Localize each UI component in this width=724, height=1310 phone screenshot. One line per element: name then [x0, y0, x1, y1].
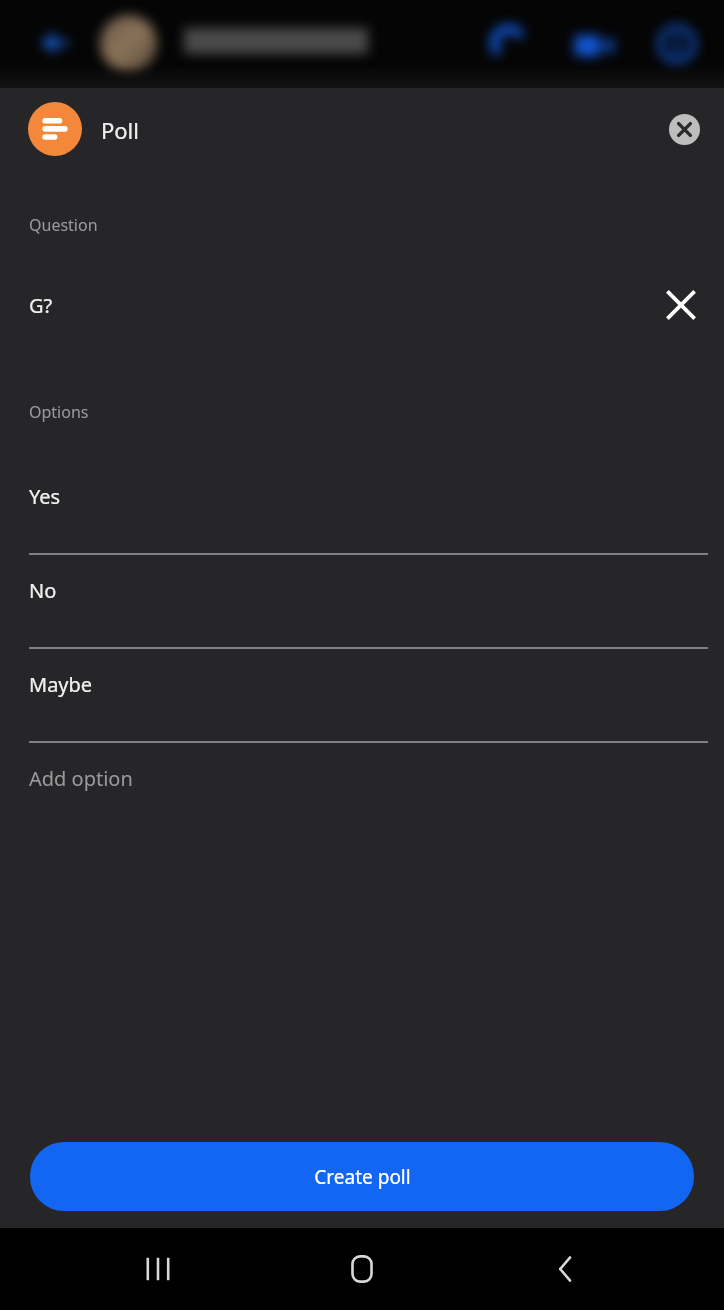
staticText: Add option	[29, 765, 133, 792]
button[interactable]: Close	[669, 114, 700, 145]
button[interactable]: G?	[0, 285, 724, 325]
button[interactable]: Poll	[28, 102, 82, 156]
staticText: Create poll	[314, 1164, 411, 1190]
button[interactable]: Home	[322, 1229, 402, 1309]
button[interactable]: Add option	[0, 754, 724, 848]
staticText: Poll	[101, 115, 139, 145]
staticText: Options	[29, 401, 89, 423]
button[interactable]: Back	[526, 1229, 606, 1309]
staticText: Maybe	[29, 671, 93, 698]
button[interactable]: Recents	[118, 1229, 198, 1309]
button[interactable]: Yes	[0, 472, 724, 566]
staticText: G?	[29, 292, 53, 319]
button[interactable]: No	[0, 566, 724, 660]
staticText: Question	[29, 214, 98, 236]
staticText: No	[29, 577, 57, 604]
staticText: Yes	[29, 483, 61, 510]
button[interactable]: Create poll	[30, 1142, 694, 1211]
button[interactable]: Clear question	[664, 288, 698, 322]
button[interactable]: Maybe	[0, 660, 724, 754]
